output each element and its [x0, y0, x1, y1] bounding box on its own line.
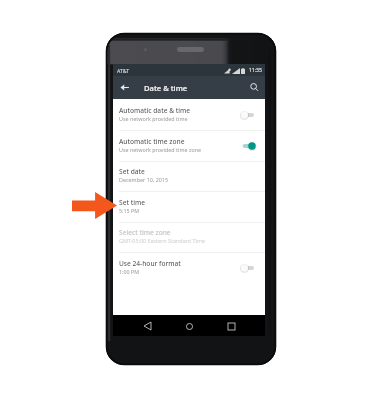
button[interactable]: Off: [241, 108, 257, 122]
button[interactable]: Automatic date & time: [113, 100, 265, 131]
staticText: AT&T: [117, 67, 130, 74]
staticText: Set time: [119, 198, 145, 207]
button[interactable]: Search: [249, 82, 260, 93]
staticText: Use network provided time: [119, 115, 188, 122]
staticText: Automatic date & time: [119, 106, 191, 115]
button[interactable]: Home: [181, 318, 197, 334]
button[interactable]: Automatic time zone: [113, 131, 265, 162]
button[interactable]: Set time: [113, 192, 265, 223]
staticText: Set date: [119, 167, 145, 176]
staticText: Date & time: [144, 83, 188, 93]
staticText: 5:15 PM: [119, 207, 140, 214]
staticText: 11:35: [249, 67, 262, 74]
staticText: December 10, 2015: [119, 176, 168, 183]
button[interactable]: Recent apps: [223, 318, 239, 334]
staticText: Use 24-hour format: [119, 259, 181, 268]
staticText: GMT-05:00 Eastern Standard Time: [119, 237, 205, 244]
staticText: Use network provided time zone: [119, 146, 202, 153]
button[interactable]: Set date: [113, 162, 265, 192]
staticText: Select time zone: [119, 228, 171, 237]
button[interactable]: Select time zone: [113, 223, 265, 253]
button[interactable]: Back: [139, 318, 155, 334]
button[interactable]: Navigate up: [119, 82, 130, 93]
staticText: Automatic time zone: [119, 137, 185, 146]
button[interactable]: On: [241, 139, 257, 153]
staticText: 1:00 PM: [119, 268, 140, 275]
button[interactable]: Use 24-hour format: [113, 253, 265, 284]
button[interactable]: Off: [241, 261, 257, 275]
